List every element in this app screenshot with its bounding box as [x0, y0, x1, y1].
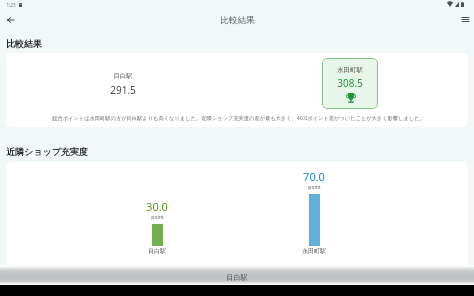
- staticText: 目白駅: [113, 72, 133, 80]
- staticText: 永田町駅: [302, 247, 326, 255]
- staticText: 近隣ショップ充実度: [6, 146, 88, 157]
- staticText: 30.0: [146, 199, 168, 214]
- staticText: point: [151, 214, 164, 221]
- staticText: 比較結果: [220, 15, 255, 26]
- button[interactable]: Back: [0, 12, 20, 27]
- button[interactable]: Menu: [456, 12, 474, 27]
- staticText: 比較結果: [6, 38, 42, 49]
- staticText: 308.5: [337, 76, 363, 90]
- button[interactable]: 目白駅: [0, 265, 474, 285]
- staticText: 目白駅: [148, 247, 166, 255]
- staticText: point: [308, 184, 321, 191]
- staticText: 目白駅: [226, 273, 248, 282]
- staticText: 総合ポイントは永田町駅の方が目白駅よりも高くなりました。近隣ショップ充実度の差が…: [52, 114, 425, 121]
- staticText: 1:23: [6, 2, 16, 8]
- staticText: 永田町駅: [337, 66, 363, 74]
- staticText: 70.0: [303, 169, 325, 184]
- staticText: 291.5: [110, 83, 136, 97]
